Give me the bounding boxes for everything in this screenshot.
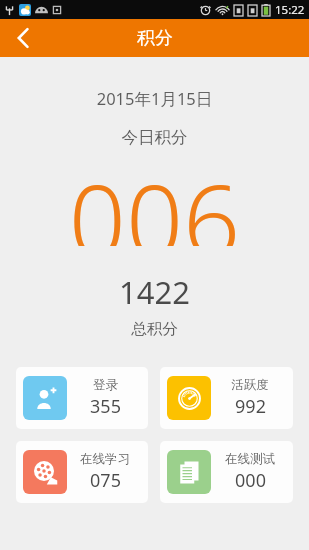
button[interactable]: 在线测试 [160,441,293,503]
button[interactable]: 在线学习 [16,441,148,503]
staticText: 活跃度 [231,377,269,393]
staticText: 075 [90,468,121,493]
staticText: 积分 [137,27,173,50]
staticText: 2015年1月15日 [0,87,309,110]
staticText: 000 [235,468,266,493]
staticText: 992 [235,394,266,419]
staticText: 在线测试 [225,451,275,467]
button[interactable]: 登录 [16,367,148,429]
staticText: 1422 [0,271,309,313]
staticText: 登录 [93,377,118,393]
button[interactable]: Back [0,19,46,57]
staticText: 今日积分 [0,127,309,148]
staticText: 006 [0,150,309,246]
staticText: 在线学习 [80,451,130,467]
staticText: 总积分 [0,319,309,339]
staticText: 355 [90,394,121,419]
staticText: 15:22 [275,2,305,18]
button[interactable]: 活跃度 [160,367,293,429]
